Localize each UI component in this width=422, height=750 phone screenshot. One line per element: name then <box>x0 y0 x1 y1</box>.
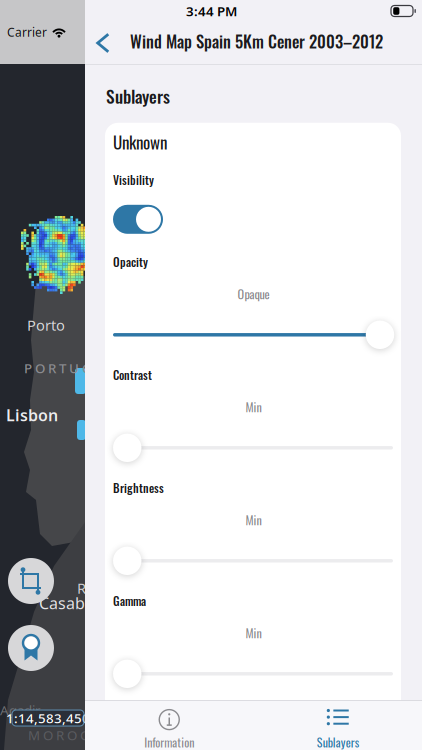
staticText: R <box>77 578 86 598</box>
staticText: 1:14,583,450 <box>6 709 90 727</box>
staticText: Gamma <box>113 592 146 609</box>
staticText: Sublayers <box>317 733 359 750</box>
staticText: Visibility <box>113 171 154 188</box>
staticText: Sublayers <box>106 83 170 109</box>
staticText: Casablan <box>39 592 108 614</box>
button[interactable]: Back <box>88 22 118 64</box>
staticText: Agadir <box>0 701 41 719</box>
staticText: Min <box>245 511 261 529</box>
staticText: Min <box>245 398 261 416</box>
staticText: M O R O C C O <box>28 726 112 744</box>
staticText: Opaque <box>237 285 269 303</box>
staticText: 3:44 PM <box>186 2 237 20</box>
staticText: Information <box>144 733 194 750</box>
button[interactable]: Bookmarks <box>8 625 54 671</box>
button[interactable]: Visibility <box>113 205 163 234</box>
staticText: Lisbon <box>6 404 58 426</box>
staticText: Carrier <box>7 24 47 40</box>
staticText: Unknown <box>113 129 167 154</box>
staticText: Wind Map Spain 5Km Cener 2003–2012 <box>130 29 383 53</box>
staticText: P O R T U G A L <box>24 359 114 377</box>
button[interactable]: Measure <box>8 558 54 604</box>
staticText: Porto <box>27 315 65 335</box>
staticText: Min <box>245 624 261 642</box>
button[interactable]: Information <box>85 701 253 750</box>
button[interactable]: Sublayers <box>253 701 422 750</box>
staticText: Brightness <box>113 479 164 496</box>
staticText: Contrast <box>113 366 152 383</box>
staticText: Opacity <box>113 253 148 270</box>
